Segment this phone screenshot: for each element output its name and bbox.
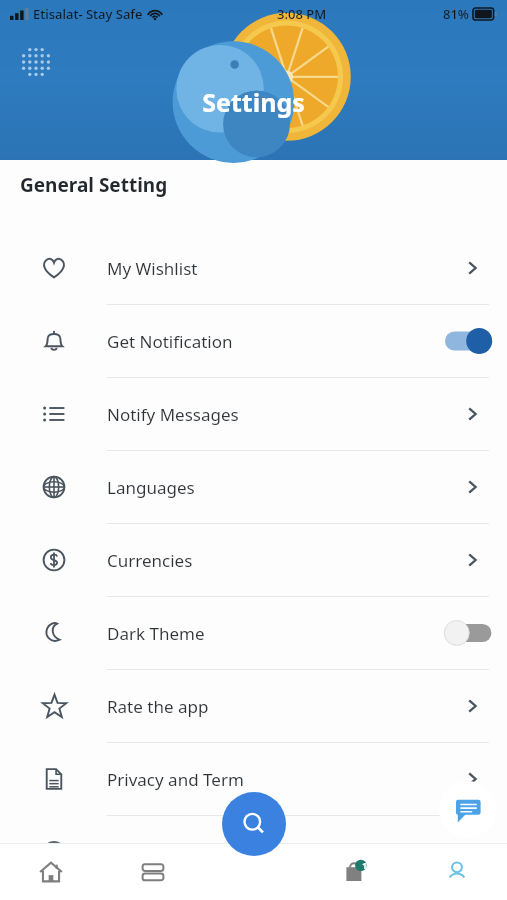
button[interactable]: Home [0,843,102,900]
staticText: 3:08 PM [277,5,327,23]
staticText: 1 [362,859,368,871]
button[interactable]: Profile [406,843,507,900]
button[interactable]: Rate the app [0,670,507,742]
staticText: Get Notification [107,330,437,353]
button[interactable]: Get Notification [0,305,507,377]
button[interactable]: Search [222,792,286,856]
staticText: General Setting [20,172,168,198]
staticText: Currencies [107,549,437,572]
staticText: Etisalat- Stay Safe [33,5,143,23]
button[interactable]: My Wishlist [0,232,507,304]
button[interactable]: Languages [0,451,507,523]
button[interactable]: About us [0,816,507,888]
staticText: Notify Messages [107,403,437,426]
staticText: My Wishlist [107,257,437,280]
staticText: About us [107,841,437,864]
button[interactable]: Currencies [0,524,507,596]
button[interactable]: Cart [305,843,406,900]
button[interactable]: Chat support [439,781,496,838]
button[interactable]: Categories [102,843,204,900]
button[interactable]: Privacy and Term [0,743,507,815]
button[interactable]: Dark Theme [0,597,507,669]
button[interactable]: Notify Messages [0,378,507,450]
staticText: 81% [443,5,469,23]
staticText: Privacy and Term [107,768,437,791]
staticText: Languages [107,476,437,499]
staticText: Settings [202,85,305,119]
staticText: Rate the app [107,695,437,718]
staticText: Dark Theme [107,622,437,645]
